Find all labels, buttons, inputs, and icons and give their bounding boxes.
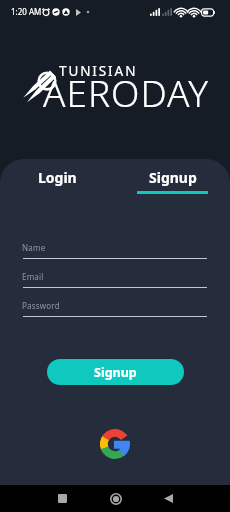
staticText: Email [22, 271, 44, 282]
staticText: Name [22, 242, 46, 253]
button[interactable]: Sign in with Google [100, 429, 130, 459]
button[interactable]: Email [23, 262, 207, 288]
button[interactable]: Name [23, 233, 207, 259]
button[interactable]: Back [156, 486, 181, 511]
button[interactable]: Password [23, 291, 207, 317]
staticText: Password [22, 300, 60, 311]
staticText: Login [38, 168, 77, 187]
button[interactable]: Signup [47, 359, 184, 385]
staticText: Signup [94, 364, 137, 381]
staticText: 1:20 AM [11, 6, 42, 17]
staticText: Signup [149, 168, 197, 187]
button[interactable]: Signup [115, 159, 230, 199]
staticText: AERODAY [43, 67, 210, 117]
staticText: TUNISIAN [59, 62, 138, 80]
button[interactable]: Login [0, 159, 115, 199]
button[interactable]: Recents [50, 486, 75, 511]
button[interactable]: Home [103, 486, 128, 511]
